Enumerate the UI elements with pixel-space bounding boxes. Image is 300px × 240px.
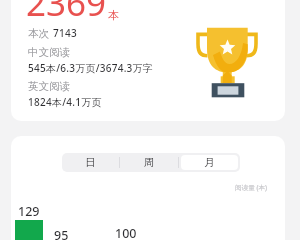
button[interactable]: 月 xyxy=(181,155,238,170)
staticText: 中文阅读 xyxy=(28,46,70,59)
staticText: 周 xyxy=(144,156,155,169)
staticText: 本次 xyxy=(28,27,49,40)
button[interactable]: 周 xyxy=(122,155,176,170)
button[interactable]: 日 xyxy=(64,155,117,170)
staticText: 月 xyxy=(204,156,215,169)
staticText: 95 xyxy=(54,227,69,240)
staticText: 545本/6.3万页/3674.3万字 xyxy=(28,61,154,75)
staticText: 英文阅读 xyxy=(28,80,70,93)
staticText: 日 xyxy=(85,156,96,169)
staticText: 100 xyxy=(115,225,137,240)
staticText: 1824本/4.1万页 xyxy=(28,95,102,109)
staticText: 本 xyxy=(108,8,119,22)
staticText: 阅读量 (本) xyxy=(235,183,268,192)
other: Trophy xyxy=(196,27,258,98)
staticText: 7143 xyxy=(53,26,77,40)
staticText: 2369 xyxy=(26,0,107,27)
staticText: 129 xyxy=(18,203,40,220)
